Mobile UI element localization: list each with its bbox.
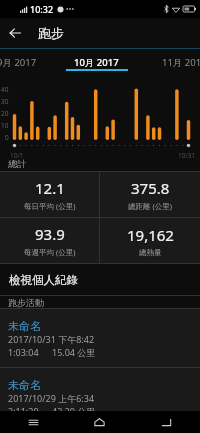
- button[interactable]: 19,162: [100, 218, 200, 263]
- staticText: 11月 2017: [162, 56, 200, 69]
- staticText: 375.8: [131, 178, 170, 198]
- button[interactable]: 12.1: [0, 172, 99, 217]
- staticText: 30: [1, 97, 9, 105]
- staticText: 42.20 公里: [52, 405, 96, 417]
- staticText: 10:32: [30, 3, 54, 15]
- staticText: 總計: [8, 158, 26, 169]
- staticText: 未命名: [8, 319, 41, 333]
- button[interactable]: 375.8: [100, 172, 200, 217]
- staticText: 每日平均 (公里): [24, 201, 76, 211]
- staticText: 總熱量: [139, 248, 162, 257]
- staticText: 10月 2017: [74, 56, 119, 69]
- staticText: 19,162: [127, 225, 174, 245]
- staticText: 未命名: [8, 378, 41, 392]
- staticText: 10: [1, 121, 9, 129]
- button[interactable]: 10月 2017: [56, 49, 136, 76]
- button[interactable]: Menu: [0, 411, 66, 433]
- staticText: 1:03:04: [8, 346, 39, 358]
- staticText: 15.04 公里: [52, 346, 96, 358]
- button[interactable]: 9月 2017: [0, 49, 57, 76]
- staticText: 每週平均 (公里): [24, 247, 76, 257]
- button[interactable]: Back: [0, 18, 29, 48]
- staticText: 93.9: [35, 224, 65, 244]
- staticText: 12.1: [35, 178, 65, 198]
- staticText: 10/1: [10, 151, 24, 160]
- staticText: 2:11:20: [8, 405, 39, 417]
- button[interactable]: 11月 2017: [144, 49, 200, 76]
- button[interactable]: 檢視個人紀錄: [0, 264, 200, 295]
- staticText: 跑步活動: [8, 297, 44, 308]
- button[interactable]: 未命名: [0, 309, 200, 367]
- button[interactable]: Back: [133, 411, 200, 433]
- button[interactable]: 93.9: [0, 218, 99, 263]
- staticText: 0: [5, 133, 9, 141]
- staticText: 2017/10/31 下午8:42: [8, 333, 95, 345]
- staticText: 20: [1, 109, 9, 117]
- staticText: 檢視個人紀錄: [9, 273, 78, 287]
- staticText: 40: [1, 85, 9, 93]
- button[interactable]: 未命名: [0, 368, 200, 426]
- staticText: 總距離 (公里): [128, 201, 172, 211]
- staticText: 9月 2017: [0, 56, 37, 69]
- staticText: 10/31: [178, 151, 196, 160]
- staticText: 2017/10/29 上午6:34: [8, 392, 95, 404]
- button[interactable]: Home: [66, 411, 133, 433]
- staticText: 跑步: [38, 25, 64, 41]
